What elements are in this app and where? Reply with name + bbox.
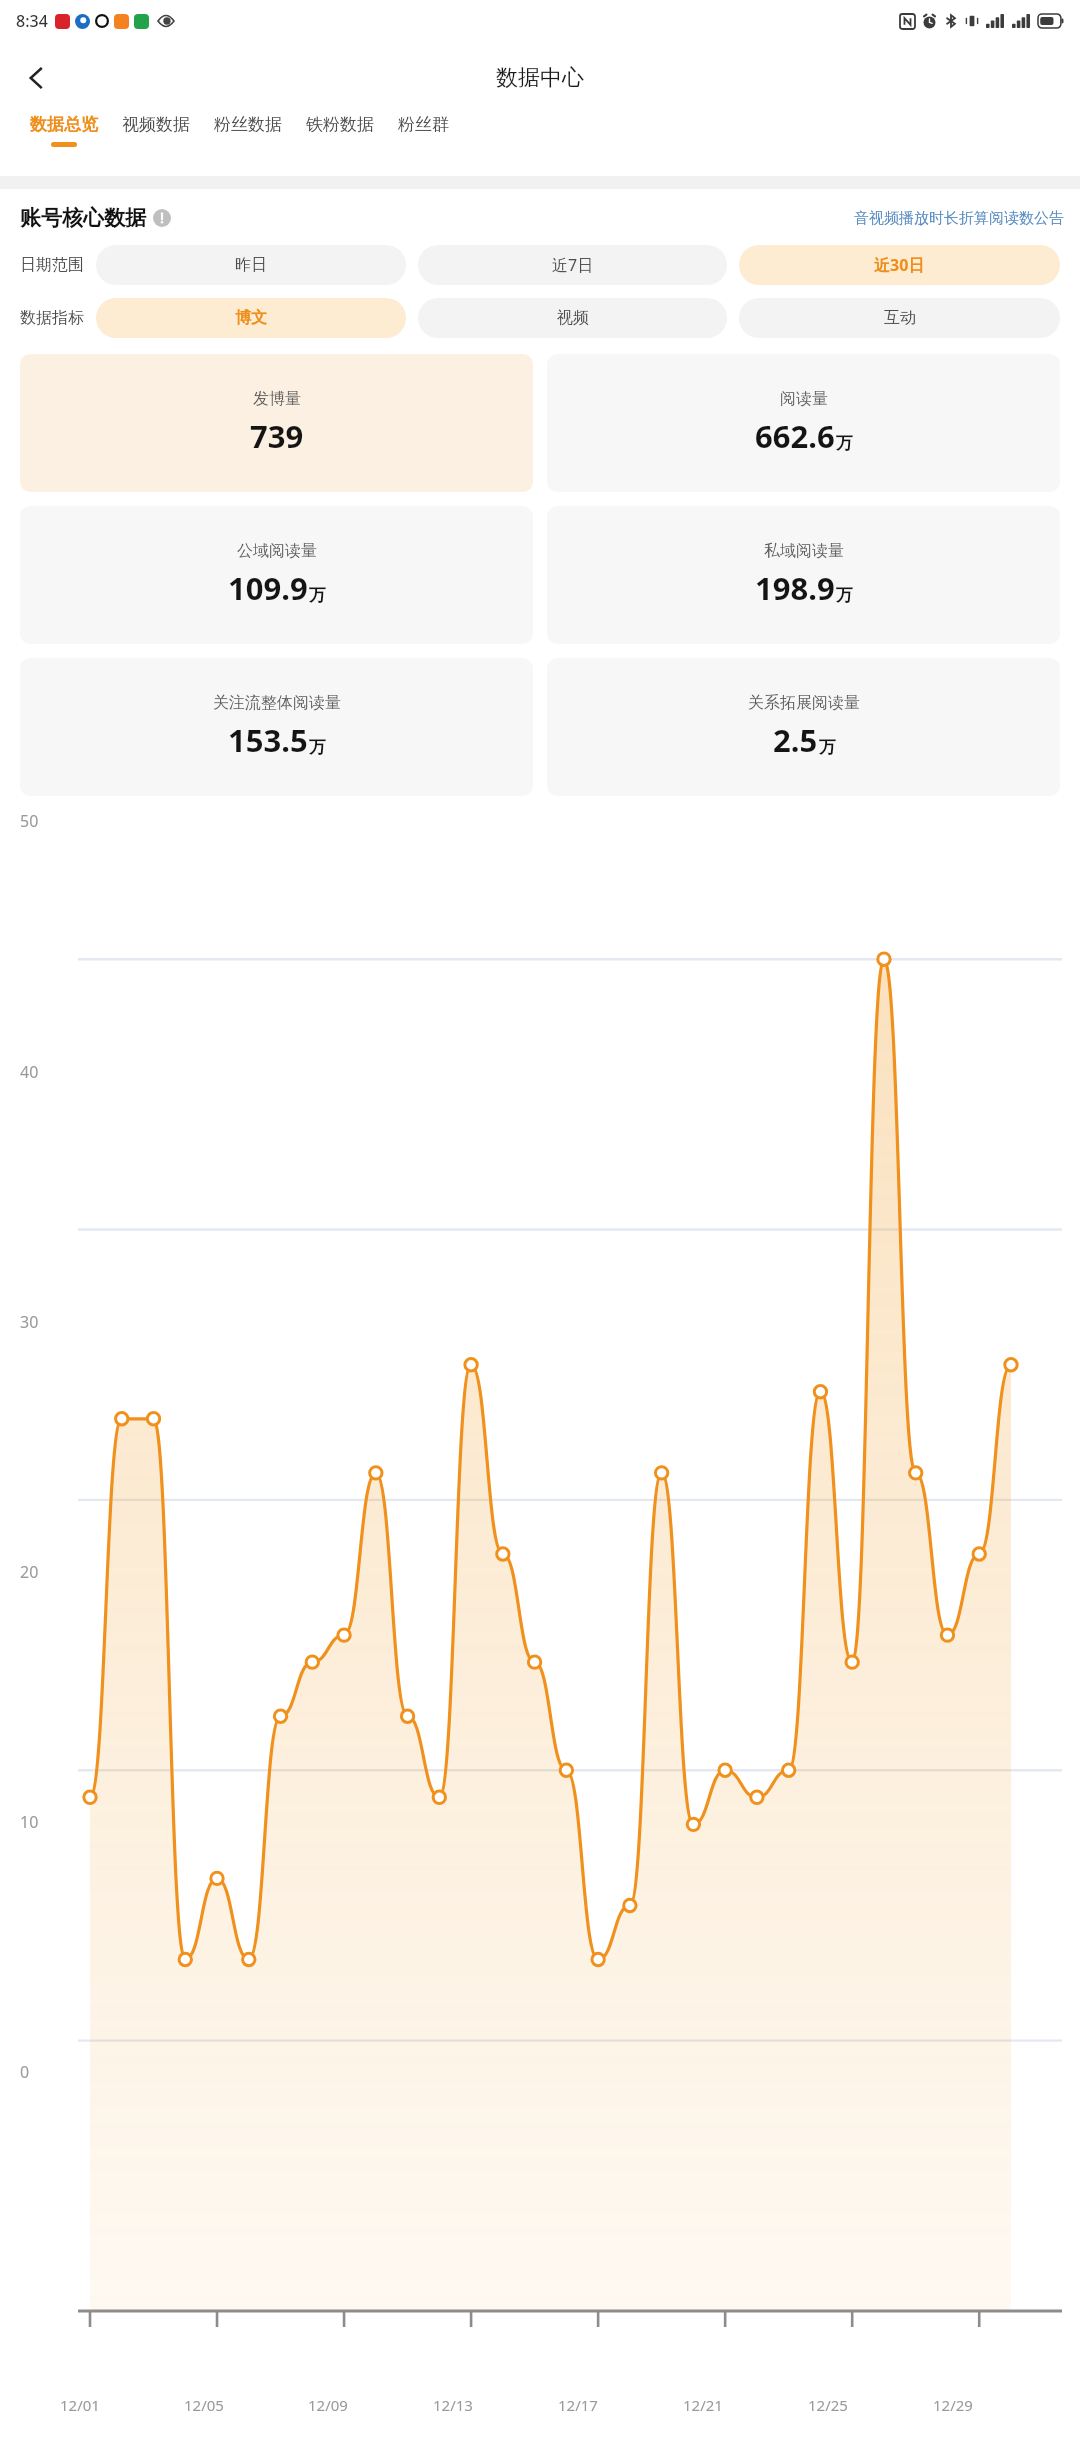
staticText: 万 [836, 585, 853, 606]
button[interactable]: 关注流整体阅读量 [20, 658, 533, 796]
staticText: 互动 [884, 308, 916, 328]
staticText: 12/05 [184, 2395, 224, 2415]
staticText: 12/21 [683, 2395, 723, 2415]
staticText: 109.9 [228, 567, 308, 609]
staticText: 153.5 [228, 719, 308, 761]
staticText: 近7日 [552, 254, 594, 276]
staticText: 8:34 [16, 10, 48, 32]
button[interactable]: 粉丝群 [386, 114, 461, 142]
button[interactable]: 粉丝数据 [202, 114, 294, 142]
staticText: 739 [250, 415, 304, 457]
staticText: 12/09 [308, 2395, 348, 2415]
staticText: 博文 [235, 308, 267, 328]
staticText: 万 [819, 737, 836, 758]
staticText: 万 [309, 585, 326, 606]
button[interactable]: 数据总览 [18, 114, 110, 147]
staticText: 40 [20, 1061, 39, 1083]
button[interactable]: 阅读量 [547, 354, 1060, 492]
button[interactable]: 近7日 [418, 245, 727, 285]
staticText: 12/13 [433, 2395, 473, 2415]
button[interactable]: 视频 [418, 298, 727, 338]
staticText: 公域阅读量 [237, 541, 317, 561]
staticText: 关注流整体阅读量 [213, 693, 341, 713]
staticText: 198.9 [755, 567, 835, 609]
button[interactable]: 近30日 [739, 245, 1060, 285]
staticText: 昨日 [235, 255, 267, 275]
staticText: 12/01 [60, 2395, 100, 2415]
button[interactable]: 博文 [96, 298, 406, 338]
button[interactable]: 互动 [739, 298, 1060, 338]
staticText: 12/29 [933, 2395, 973, 2415]
staticText: 30 [20, 1311, 39, 1333]
staticText: 数据指标 [20, 308, 84, 328]
staticText: 万 [309, 737, 326, 758]
staticText: 20 [20, 1561, 39, 1583]
button[interactable]: 发博量 [20, 354, 533, 492]
staticText: 铁粉数据 [306, 114, 374, 135]
staticText: 阅读量 [780, 389, 828, 409]
staticText: 12/25 [808, 2395, 848, 2415]
staticText: 2.5 [773, 719, 818, 761]
button[interactable]: 关系拓展阅读量 [547, 658, 1060, 796]
button[interactable]: Info [153, 209, 171, 227]
button[interactable]: Back [12, 54, 60, 102]
staticText: 粉丝数据 [214, 114, 282, 135]
button[interactable]: 铁粉数据 [294, 114, 386, 142]
staticText: 10 [20, 1811, 39, 1833]
staticText: 数据中心 [496, 64, 584, 92]
staticText: 账号核心数据 [20, 205, 146, 231]
staticText: 关系拓展阅读量 [748, 693, 860, 713]
button[interactable]: 公域阅读量 [20, 506, 533, 644]
staticText: 粉丝群 [398, 114, 449, 135]
staticText: 12/17 [558, 2395, 598, 2415]
staticText: 视频 [557, 308, 589, 328]
button[interactable]: 音视频播放时长折算阅读数公告 [854, 209, 1064, 228]
button[interactable]: 视频数据 [110, 114, 202, 142]
staticText: 0 [20, 2061, 30, 2083]
staticText: 发博量 [253, 389, 301, 409]
staticText: 视频数据 [122, 114, 190, 135]
staticText: 数据总览 [30, 114, 98, 135]
staticText: 日期范围 [20, 255, 84, 275]
button[interactable]: 私域阅读量 [547, 506, 1060, 644]
staticText: 私域阅读量 [764, 541, 844, 561]
staticText: 近30日 [874, 254, 925, 276]
button[interactable]: 昨日 [96, 245, 406, 285]
staticText: 万 [836, 433, 853, 454]
staticText: 662.6 [755, 415, 835, 457]
staticText: 50 [20, 810, 39, 832]
